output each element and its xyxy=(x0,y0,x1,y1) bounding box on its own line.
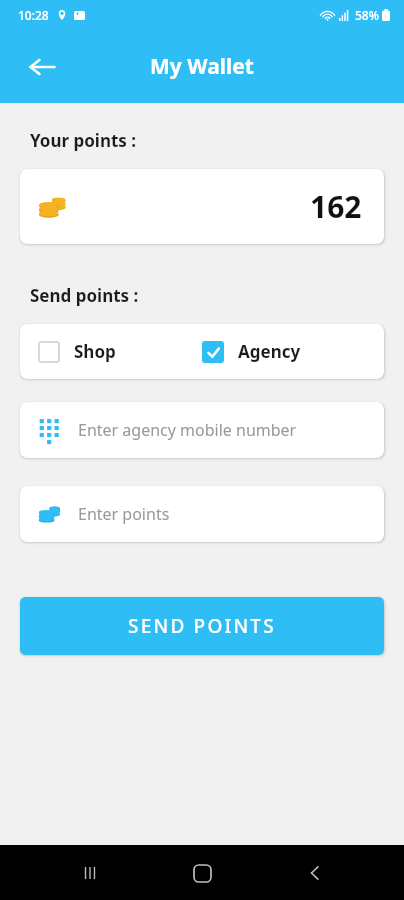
staticText: Your points : xyxy=(30,129,137,152)
staticText: Agency xyxy=(238,340,301,363)
staticText: My Wallet xyxy=(150,52,254,81)
button[interactable]: Shop xyxy=(20,324,202,379)
button[interactable]: SEND POINTS xyxy=(20,597,384,655)
staticText: Shop xyxy=(74,340,116,363)
staticText: Enter points xyxy=(78,503,170,525)
button[interactable]: Recent apps xyxy=(67,850,113,896)
button[interactable]: Enter points xyxy=(20,486,384,542)
button[interactable]: Back xyxy=(18,43,66,91)
staticText: 58% xyxy=(355,7,379,23)
staticText: Enter agency mobile number xyxy=(78,419,297,441)
button[interactable]: Home xyxy=(179,850,225,896)
button[interactable]: Back xyxy=(292,850,338,896)
button[interactable]: Enter agency mobile number xyxy=(20,402,384,458)
staticText: 162 xyxy=(310,186,362,227)
staticText: SEND POINTS xyxy=(128,613,276,639)
staticText: Send points : xyxy=(30,284,139,307)
staticText: 10:28 xyxy=(18,7,49,23)
button[interactable]: Agency xyxy=(202,324,384,379)
button[interactable]: 162 xyxy=(20,169,384,244)
